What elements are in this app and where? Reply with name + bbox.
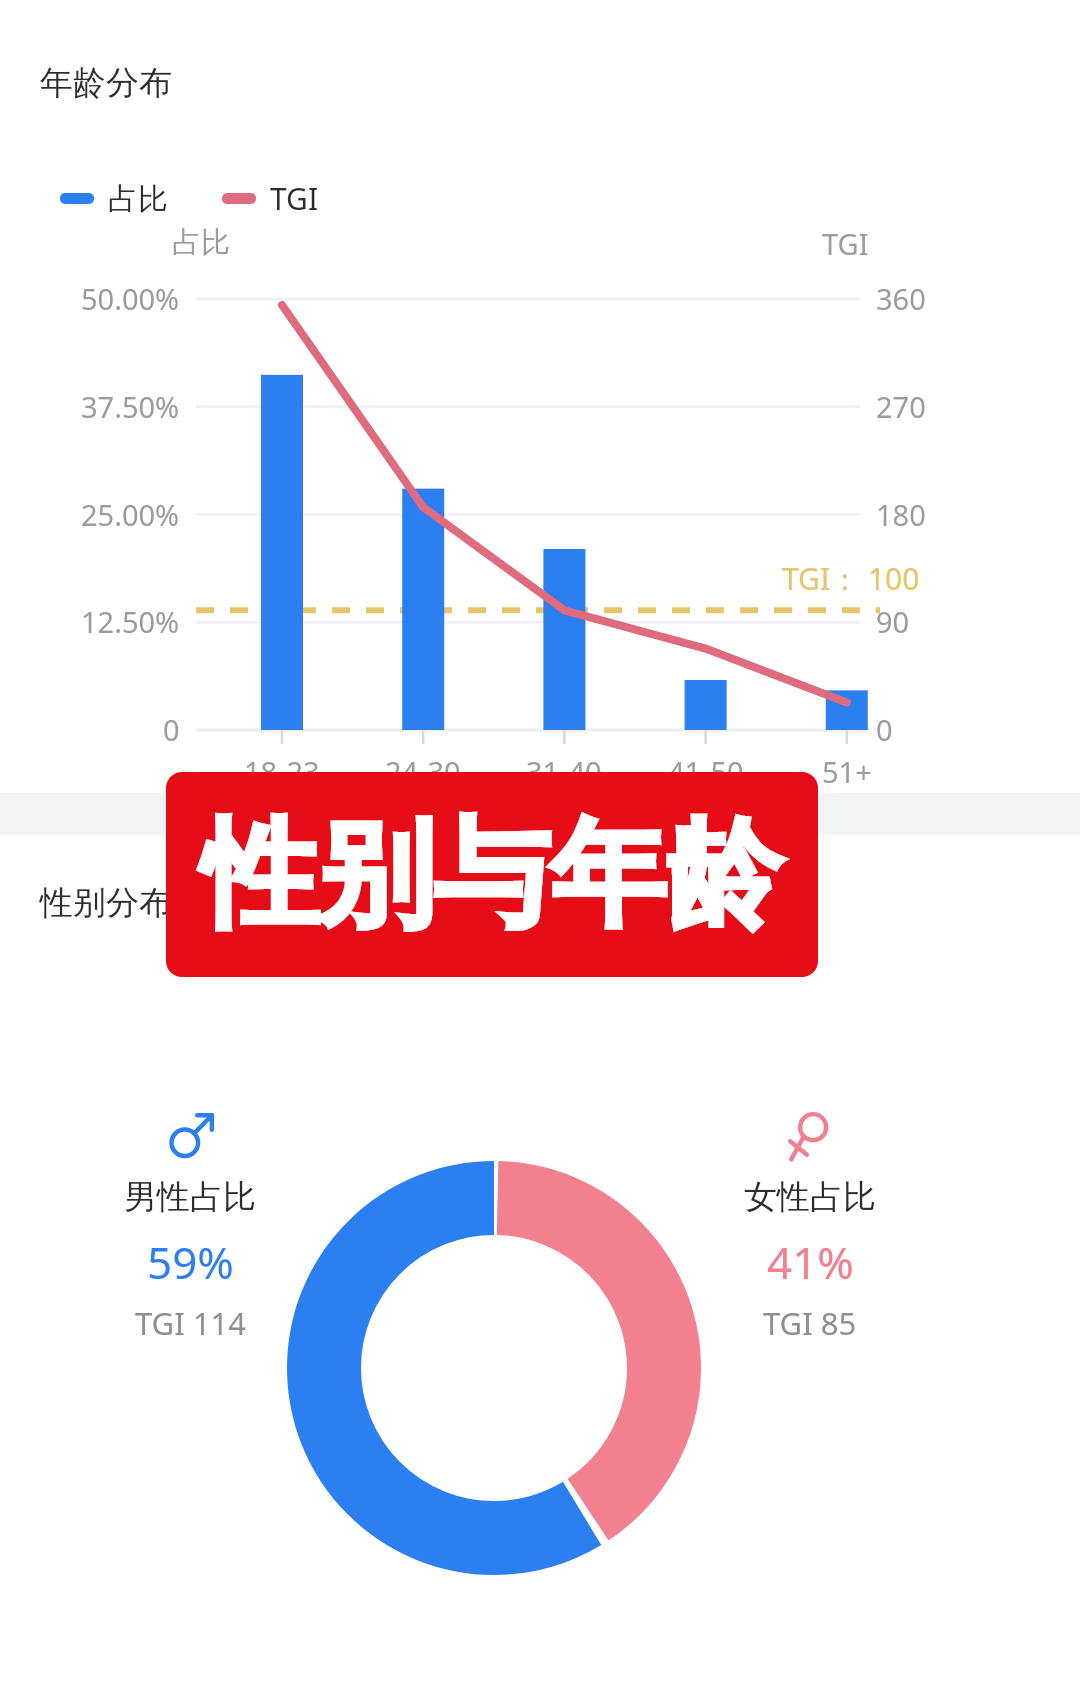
staticText: 31-40 [526,752,602,791]
button[interactable]: Female [680,1110,940,1344]
button[interactable]: 占比 [60,178,319,219]
button[interactable]: 性别与年龄 [166,772,818,977]
other: Female [784,1110,836,1162]
staticText: 37.50% [81,387,180,426]
staticText: 90 [876,602,910,641]
button[interactable]: Male [60,1110,320,1344]
staticText: 25.00% [81,495,180,534]
staticText: 年龄分布 [40,62,172,104]
staticText: TGI [270,178,319,219]
staticText: TGI [822,224,869,263]
staticText: TGI 85 [763,1302,857,1344]
staticText: 占比 [108,180,168,218]
staticText: 18-23 [244,752,320,791]
other: Male [164,1110,216,1162]
staticText: 50.00% [81,279,180,318]
staticText: 占比 [172,224,230,261]
staticText: 性别分布 [40,882,172,924]
staticText: 41% [767,1232,854,1292]
staticText: 24-30 [385,752,461,791]
staticText: 0 [163,710,180,749]
staticText: 0 [876,710,893,749]
staticText: 51+ [822,752,872,791]
button[interactable]: 年龄分布 [40,62,172,104]
staticText: 59% [147,1232,234,1292]
staticText: 180 [876,495,926,534]
button[interactable]: 性别分布 [40,882,172,924]
staticText: 12.50% [81,602,180,641]
staticText: 270 [876,387,926,426]
staticText: TGI 114 [135,1302,246,1344]
staticText: 男性占比 [124,1176,256,1218]
staticText: 41-50 [668,752,744,791]
staticText: TGI： 100 [782,558,920,599]
staticText: 女性占比 [744,1176,876,1218]
staticText: 性别与年龄 [202,802,782,948]
staticText: 360 [876,279,926,318]
